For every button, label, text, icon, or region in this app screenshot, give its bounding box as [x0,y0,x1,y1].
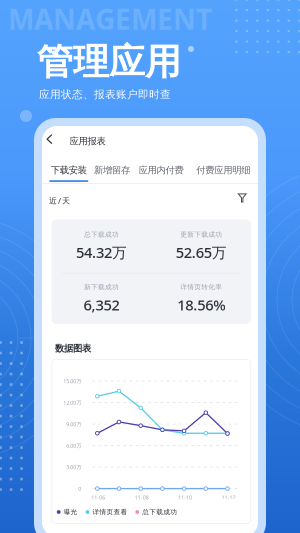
staticText: 近7天 [49,195,70,206]
staticText: 详情页转化率 [180,283,222,291]
button[interactable]: 付费应用明细 [192,160,254,182]
staticText: 9.00万 [66,421,81,428]
staticText: 11-10 [178,494,192,501]
staticText: 曝光 [64,508,78,516]
staticText: 6.00万 [66,442,81,449]
button[interactable]: 下载安装 [51,160,86,182]
staticText: 52.65万 [176,242,227,262]
staticText: 6,352 [83,295,119,315]
staticText: 更新下载成功 [180,230,222,238]
staticText: 0 [78,485,81,492]
staticText: 11-12 [221,494,235,501]
staticText: 详情页查看 [92,508,127,516]
staticText: 下载安装 [51,164,87,176]
staticText: 应用内付费 [139,164,184,176]
staticText: 付费应用明细 [196,164,250,176]
staticText: 11-08 [135,494,149,501]
staticText: 管理应用 [37,40,181,84]
staticText: 总下载成功 [84,230,119,238]
staticText: MANAGEMENT [8,0,212,38]
staticText: 11-06 [91,494,105,501]
staticText: 18.56% [177,295,225,315]
staticText: 54.32万 [76,242,127,262]
staticText: 12.00万 [63,399,81,406]
button[interactable]: 应用内付费 [138,160,184,182]
button[interactable]: 新增留存 [94,160,130,182]
staticText: 应用报表 [69,135,105,147]
staticText: 3.00万 [66,464,81,471]
staticText: 总下载成功 [142,508,177,516]
staticText: 新下载成功 [84,283,119,291]
staticText: 数据图表 [55,343,91,354]
staticText: 应用状态、报表账户即时查 [39,88,171,101]
button[interactable]: Back [45,132,63,150]
staticText: 15.00万 [63,378,81,385]
button[interactable]: Filter [238,193,252,207]
staticText: 新增留存 [94,164,130,176]
